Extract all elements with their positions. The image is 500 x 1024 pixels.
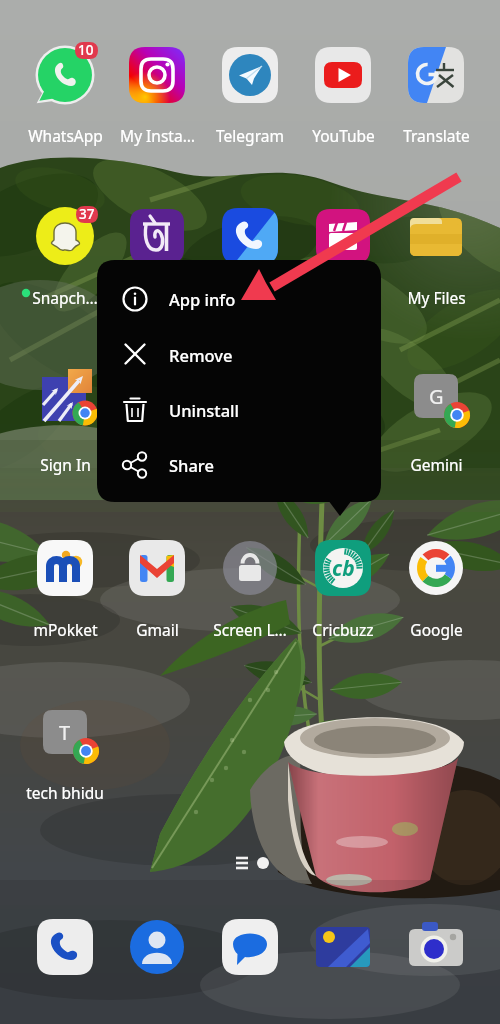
button[interactable]: Gmail xyxy=(111,535,203,641)
staticText: Cricbuzz xyxy=(312,619,374,640)
staticText: T xyxy=(59,719,71,746)
button[interactable]: app xyxy=(111,203,203,309)
button[interactable]: app xyxy=(204,203,296,309)
button[interactable]: Remove xyxy=(97,327,381,382)
staticText: cb xyxy=(332,554,355,583)
staticText: App info xyxy=(169,288,236,310)
staticText: 10 xyxy=(78,41,94,59)
staticText: G xyxy=(429,383,444,410)
button[interactable]: Sign In xyxy=(19,364,111,476)
staticText: mPokket xyxy=(33,619,98,640)
staticText: My Insta… xyxy=(120,125,195,146)
staticText: Remove xyxy=(169,344,233,366)
staticText: Telegram xyxy=(216,125,284,146)
button[interactable]: app xyxy=(297,364,389,476)
button[interactable]: Screen L… xyxy=(204,535,296,641)
staticText: tech bhidu xyxy=(26,782,104,803)
button[interactable]: Snapch… xyxy=(19,203,111,309)
staticText: My Files xyxy=(407,287,466,308)
button[interactable]: Uninstall xyxy=(97,382,381,437)
button[interactable]: Gemini xyxy=(390,364,482,476)
button[interactable]: YouTube xyxy=(297,42,389,147)
staticText: Share xyxy=(169,454,214,476)
staticText: Screen L… xyxy=(213,619,287,640)
staticText: Google xyxy=(410,619,463,640)
staticText: Uninstall xyxy=(169,399,240,421)
button[interactable]: Cricbuzz xyxy=(297,535,389,641)
button[interactable]: My Insta… xyxy=(111,42,203,147)
button[interactable]: Google xyxy=(390,535,482,641)
button[interactable]: app xyxy=(111,364,203,476)
staticText: 37 xyxy=(79,205,95,223)
button[interactable]: Share xyxy=(97,437,381,492)
button[interactable]: Telegram xyxy=(204,42,296,147)
staticText: YouTube xyxy=(312,125,375,146)
button[interactable]: app xyxy=(297,203,389,309)
staticText: Snapch… xyxy=(32,287,98,308)
button[interactable]: mPokket xyxy=(19,535,111,641)
button[interactable]: app xyxy=(204,364,296,476)
button[interactable]: tech bhidu xyxy=(19,700,111,804)
button[interactable]: Translate xyxy=(390,42,482,147)
staticText: Translate xyxy=(403,125,470,146)
staticText: Sign In xyxy=(40,454,91,475)
staticText: WhatsApp xyxy=(28,125,103,146)
button[interactable]: My Files xyxy=(390,203,482,309)
button[interactable]: App info xyxy=(97,271,381,326)
button[interactable]: WhatsApp xyxy=(19,42,111,147)
staticText: Gmail xyxy=(136,619,179,640)
staticText: Gemini xyxy=(410,454,463,475)
